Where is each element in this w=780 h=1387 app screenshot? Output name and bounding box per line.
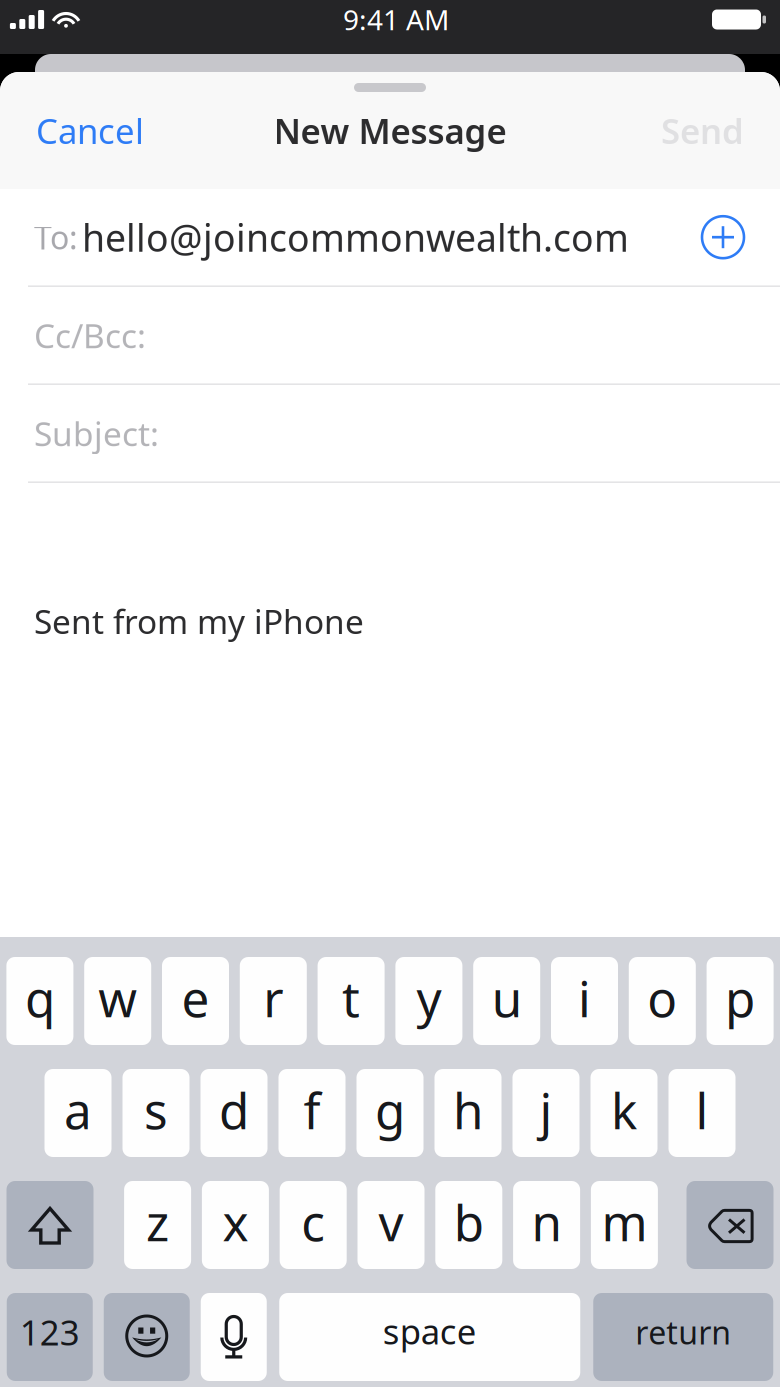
button[interactable]: 123 bbox=[7, 1293, 93, 1381]
button[interactable]: Shift bbox=[6, 1181, 93, 1269]
button[interactable]: Dictate bbox=[201, 1293, 267, 1381]
button[interactable]: To: bbox=[0, 189, 780, 285]
button[interactable]: r bbox=[240, 957, 307, 1045]
button[interactable]: a bbox=[44, 1069, 111, 1157]
button[interactable]: q bbox=[6, 957, 73, 1045]
staticText: z bbox=[146, 1189, 169, 1255]
staticText: New Message bbox=[273, 107, 506, 153]
staticText: k bbox=[611, 1077, 637, 1143]
staticText: p bbox=[725, 965, 755, 1031]
button[interactable]: return bbox=[593, 1293, 773, 1381]
staticText: d bbox=[219, 1077, 249, 1143]
staticText: w bbox=[98, 965, 137, 1031]
staticText: l bbox=[695, 1077, 708, 1143]
staticText: Cc/Bcc: bbox=[34, 313, 146, 357]
button[interactable]: l bbox=[668, 1069, 735, 1157]
button[interactable]: x bbox=[202, 1181, 269, 1269]
staticText: t bbox=[342, 965, 360, 1031]
button[interactable]: Emoji bbox=[104, 1293, 190, 1381]
staticText: x bbox=[222, 1189, 248, 1255]
button[interactable]: c bbox=[280, 1181, 347, 1269]
button[interactable]: p bbox=[707, 957, 774, 1045]
staticText: y bbox=[416, 965, 441, 1031]
button[interactable]: f bbox=[278, 1069, 345, 1157]
button[interactable]: s bbox=[122, 1069, 189, 1157]
staticText: 9:41 AM bbox=[343, 1, 449, 38]
staticText: To: bbox=[34, 216, 78, 258]
staticText: v bbox=[378, 1189, 403, 1255]
staticText: Sent from my iPhone bbox=[34, 599, 364, 643]
button[interactable]: Add contact bbox=[687, 201, 759, 273]
button[interactable]: v bbox=[357, 1181, 424, 1269]
button[interactable]: w bbox=[84, 957, 151, 1045]
button[interactable]: Cc/Bcc: bbox=[0, 287, 780, 383]
staticText: b bbox=[454, 1189, 484, 1255]
staticText: e bbox=[181, 965, 209, 1031]
staticText: g bbox=[375, 1077, 405, 1143]
staticText: a bbox=[64, 1077, 92, 1143]
button[interactable]: y bbox=[395, 957, 462, 1045]
staticText: 123 bbox=[20, 1309, 80, 1355]
button[interactable]: o bbox=[629, 957, 696, 1045]
button[interactable]: Sent from my iPhone bbox=[0, 483, 780, 643]
staticText: Cancel bbox=[36, 107, 144, 153]
staticText: c bbox=[301, 1189, 325, 1255]
button[interactable]: m bbox=[591, 1181, 658, 1269]
staticText: Subject: bbox=[34, 411, 159, 455]
staticText: i bbox=[578, 965, 591, 1031]
button[interactable]: k bbox=[590, 1069, 657, 1157]
staticText: u bbox=[492, 965, 522, 1031]
button[interactable]: space bbox=[279, 1293, 580, 1381]
staticText: o bbox=[647, 965, 677, 1031]
staticText: r bbox=[263, 965, 283, 1031]
staticText: s bbox=[144, 1077, 168, 1143]
button[interactable]: d bbox=[200, 1069, 267, 1157]
button[interactable]: e bbox=[162, 957, 229, 1045]
button[interactable]: b bbox=[435, 1181, 502, 1269]
staticText: hello@joincommonwealth.com bbox=[82, 212, 629, 262]
button[interactable]: t bbox=[318, 957, 385, 1045]
button[interactable]: Subject: bbox=[0, 385, 780, 481]
staticText: Send bbox=[661, 107, 744, 153]
button[interactable]: Cancel bbox=[0, 92, 166, 168]
button[interactable]: g bbox=[356, 1069, 423, 1157]
staticText: h bbox=[453, 1077, 483, 1143]
button[interactable]: h bbox=[434, 1069, 501, 1157]
button[interactable]: j bbox=[512, 1069, 579, 1157]
staticText: space bbox=[383, 1308, 477, 1354]
staticText: n bbox=[532, 1189, 562, 1255]
button[interactable]: Delete bbox=[686, 1181, 773, 1269]
staticText: return bbox=[635, 1311, 731, 1353]
staticText: q bbox=[25, 965, 55, 1031]
staticText: m bbox=[601, 1189, 647, 1255]
button[interactable]: i bbox=[551, 957, 618, 1045]
button[interactable]: z bbox=[124, 1181, 191, 1269]
staticText: f bbox=[303, 1077, 320, 1143]
staticText: j bbox=[539, 1077, 552, 1143]
button[interactable]: u bbox=[473, 957, 540, 1045]
button[interactable]: n bbox=[513, 1181, 580, 1269]
button[interactable]: Send bbox=[639, 92, 780, 168]
